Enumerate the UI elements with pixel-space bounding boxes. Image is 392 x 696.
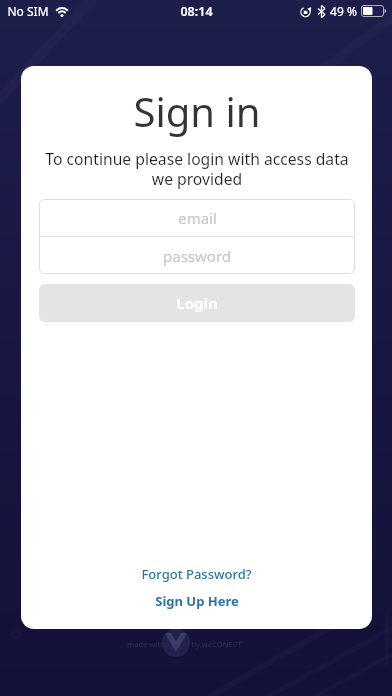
- staticText: email: [178, 208, 217, 228]
- staticText: No SIM: [7, 3, 49, 19]
- button[interactable]: Sign Up Here: [147, 590, 247, 612]
- staticText: 49 %: [330, 3, 357, 19]
- staticText: Login: [176, 293, 218, 313]
- button[interactable]: password: [39, 237, 355, 274]
- button[interactable]: email: [39, 199, 355, 236]
- staticText: To continue please login with access dat…: [45, 148, 349, 190]
- staticText: by weCONECT: [191, 639, 242, 649]
- staticText: password: [163, 246, 231, 266]
- button[interactable]: Forgot Password?: [133, 563, 260, 585]
- button[interactable]: Login: [39, 284, 355, 322]
- staticText: Forgot Password?: [141, 565, 252, 583]
- staticText: 08:14: [180, 3, 213, 20]
- staticText: Sign Up Here: [155, 592, 239, 610]
- staticText: Sign in: [133, 84, 261, 138]
- staticText: made with: [127, 639, 165, 649]
